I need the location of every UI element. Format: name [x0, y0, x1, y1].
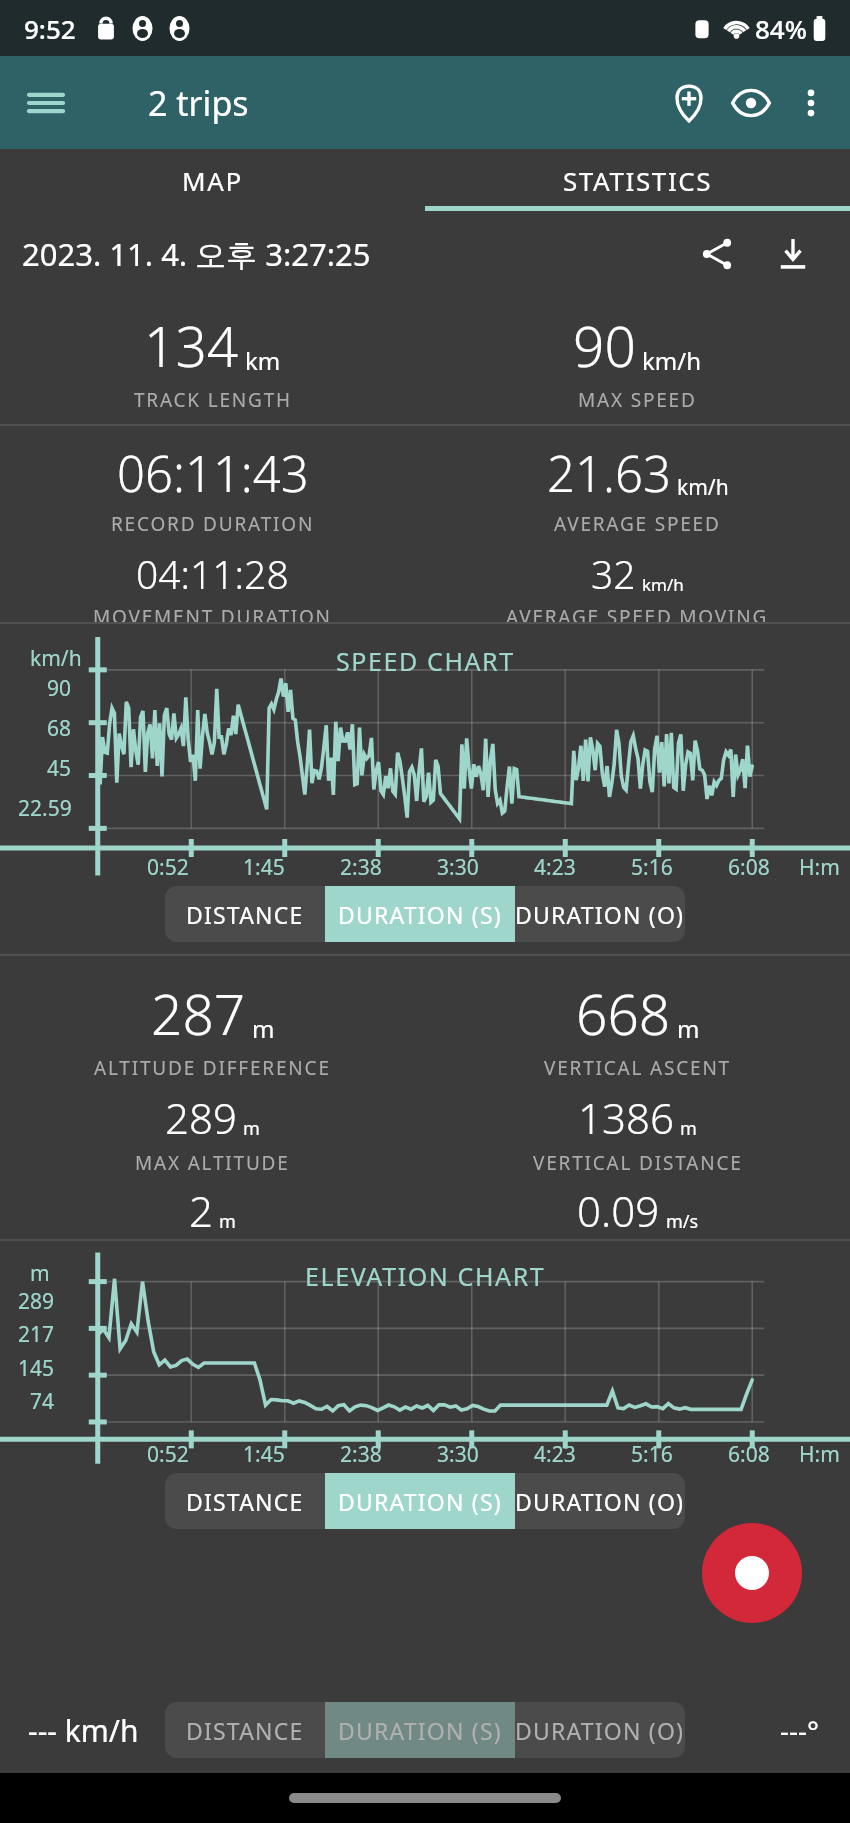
staticText: 68 [47, 714, 72, 743]
staticText: 0.09 [577, 1182, 660, 1239]
staticText: 90 [47, 674, 72, 703]
staticText: DISTANCE [186, 899, 304, 930]
staticText: m [677, 1012, 700, 1045]
button[interactable]: STATISTICS [425, 149, 850, 211]
button[interactable]: DISTANCE [165, 886, 325, 942]
staticText: 04:11:28 [136, 547, 289, 600]
staticText: m [30, 1259, 50, 1288]
staticText: 4:23 [534, 853, 576, 882]
staticText: 287 [151, 976, 246, 1051]
staticText: 0:52 [147, 1440, 189, 1469]
staticText: STATISTICS [563, 163, 713, 198]
staticText: DURATION (S) [338, 1486, 502, 1517]
staticText: ELEVATION CHART [305, 1259, 546, 1293]
staticText: 74 [30, 1387, 55, 1416]
button[interactable]: MAP [0, 149, 425, 211]
staticText: 84% [755, 11, 807, 46]
staticText: km/h [30, 644, 82, 673]
staticText: km [245, 344, 281, 377]
staticText: DISTANCE [186, 1486, 304, 1517]
staticText: MAX ALTITUDE [135, 1150, 290, 1176]
staticText: MAP [182, 163, 243, 198]
staticText: 145 [18, 1354, 55, 1383]
staticText: DURATION (S) [338, 1715, 502, 1746]
staticText: MAX SPEED [578, 387, 697, 413]
staticText: 9:52 [24, 11, 76, 46]
staticText: m [219, 1209, 236, 1234]
staticText: 45 [47, 754, 72, 783]
staticText: AVERAGE SPEED [554, 511, 721, 537]
staticText: 32 [591, 547, 636, 600]
button[interactable]: DURATION (S) [325, 1702, 515, 1758]
staticText: 134 [144, 308, 239, 383]
staticText: DURATION (O) [515, 899, 685, 930]
button[interactable]: Download [762, 223, 824, 285]
staticText: m [680, 1116, 697, 1141]
staticText: 21.63 [547, 440, 671, 507]
staticText: km/h [642, 344, 702, 377]
button[interactable]: DISTANCE [165, 1702, 325, 1758]
button[interactable]: DURATION (S) [325, 1473, 515, 1529]
staticText: AVERAGE SPEED MOVING [506, 604, 769, 622]
staticText: H:m [799, 853, 840, 882]
staticText: SPEED CHART [336, 644, 515, 678]
staticText: --- km/h [28, 1710, 139, 1751]
staticText: m [243, 1116, 260, 1141]
staticText: 668 [576, 976, 671, 1051]
staticText: 1:45 [243, 1440, 285, 1469]
staticText: 289 [18, 1287, 55, 1316]
button[interactable]: Share [686, 223, 748, 285]
staticText: 90 [573, 308, 636, 383]
staticText: 1386 [578, 1089, 674, 1146]
staticText: 2023. 11. 4. 오후 3:27:25 [22, 233, 371, 275]
staticText: 5:16 [631, 853, 673, 882]
staticText: 6:08 [728, 1440, 770, 1469]
button[interactable]: Record track [702, 1523, 802, 1623]
staticText: 289 [165, 1089, 237, 1146]
staticText: 2 trips [148, 80, 249, 126]
staticText: MOVEMENT DURATION [93, 604, 332, 622]
staticText: 4:23 [534, 1440, 576, 1469]
staticText: VERTICAL ASCENT [544, 1055, 731, 1081]
staticText: ALTITUDE DIFFERENCE [94, 1055, 331, 1081]
staticText: DURATION (O) [515, 1486, 685, 1517]
staticText: 6:08 [728, 853, 770, 882]
button[interactable]: More options [782, 74, 840, 132]
button[interactable]: DURATION (O) [515, 886, 685, 942]
staticText: 0:52 [147, 853, 189, 882]
staticText: DISTANCE [186, 1715, 304, 1746]
staticText: km/h [642, 573, 684, 596]
staticText: m [252, 1012, 275, 1045]
button[interactable]: DISTANCE [165, 1473, 325, 1529]
staticText: m/s [666, 1209, 699, 1234]
staticText: 2:38 [340, 1440, 382, 1469]
staticText: 22.59 [18, 794, 72, 823]
staticText: VERTICAL DISTANCE [533, 1150, 743, 1176]
button[interactable]: Visibility [720, 72, 782, 134]
staticText: TRACK LENGTH [134, 387, 292, 413]
button[interactable]: DURATION (S) [325, 886, 515, 942]
button[interactable]: Menu [14, 71, 78, 135]
staticText: RECORD DURATION [111, 511, 315, 537]
staticText: DURATION (O) [515, 1715, 685, 1746]
button[interactable]: DURATION (O) [515, 1473, 685, 1529]
staticText: 217 [18, 1320, 55, 1349]
staticText: ---° [780, 1711, 820, 1749]
staticText: 1:45 [243, 853, 285, 882]
staticText: 5:16 [631, 1440, 673, 1469]
button[interactable]: Add location [658, 72, 720, 134]
staticText: 2:38 [340, 853, 382, 882]
staticText: DURATION (S) [338, 899, 502, 930]
staticText: 3:30 [437, 853, 479, 882]
button[interactable]: DURATION (O) [515, 1702, 685, 1758]
staticText: 2 [189, 1182, 213, 1239]
staticText: 3:30 [437, 1440, 479, 1469]
staticText: H:m [799, 1440, 840, 1469]
staticText: km/h [677, 473, 729, 502]
staticText: 06:11:43 [117, 440, 309, 507]
